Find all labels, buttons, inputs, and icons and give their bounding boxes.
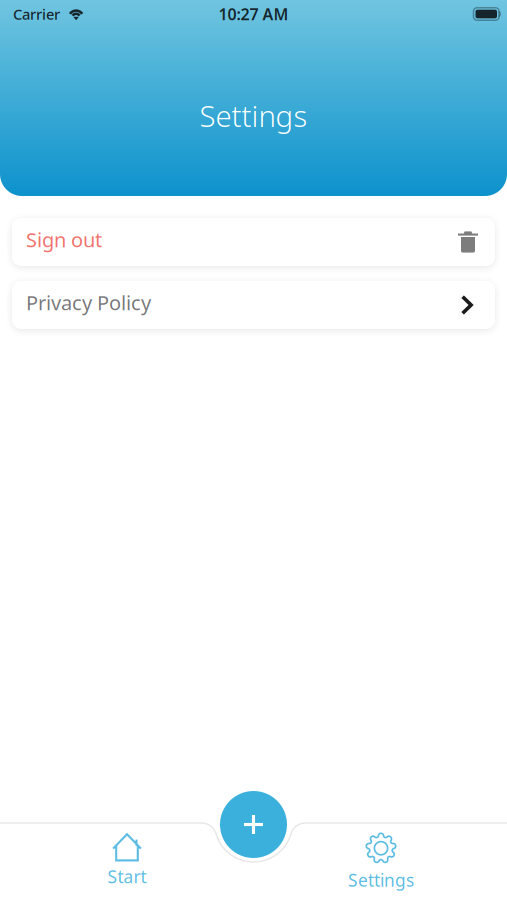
button[interactable]: Add xyxy=(220,791,287,858)
staticText: Settings xyxy=(348,868,414,891)
button[interactable]: Settings xyxy=(296,816,466,900)
button[interactable]: Sign out xyxy=(12,218,495,266)
button[interactable]: Privacy Policy xyxy=(12,281,495,329)
staticText: Sign out xyxy=(26,226,102,253)
staticText: Carrier xyxy=(13,4,60,24)
button[interactable]: Start xyxy=(42,815,212,900)
staticText: Privacy Policy xyxy=(26,289,151,316)
staticText: Settings xyxy=(199,96,307,135)
staticText: Start xyxy=(107,865,146,888)
staticText: 10:27 AM xyxy=(218,3,288,25)
